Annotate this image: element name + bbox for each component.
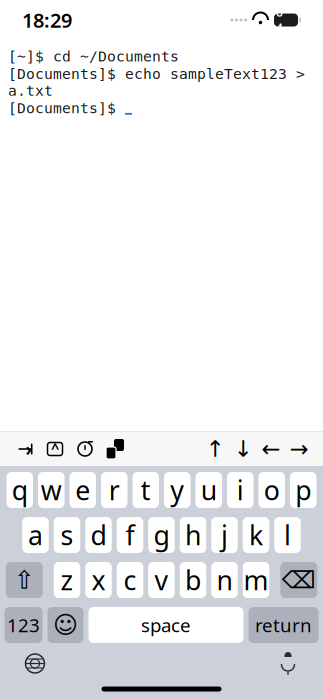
- button[interactable]: k: [243, 517, 269, 553]
- staticText: ↓: [233, 436, 252, 462]
- button[interactable]: Emoji: [47, 607, 83, 643]
- staticText: ☺: [53, 611, 78, 639]
- staticText: c: [123, 562, 136, 598]
- staticText: 18:29: [22, 7, 72, 33]
- staticText: s: [60, 517, 73, 553]
- button[interactable]: r: [101, 472, 127, 508]
- button[interactable]: y: [164, 472, 190, 508]
- button[interactable]: Up: [201, 432, 229, 466]
- staticText: a: [28, 517, 43, 553]
- button[interactable]: f: [117, 517, 143, 553]
- button[interactable]: h: [180, 517, 206, 553]
- staticText: b: [185, 562, 201, 598]
- button[interactable]: z: [54, 562, 80, 598]
- button[interactable]: Dictation: [271, 648, 305, 678]
- staticText: return: [255, 613, 312, 637]
- button[interactable]: c: [117, 562, 143, 598]
- button[interactable]: a: [22, 517, 49, 553]
- staticText: u: [201, 472, 217, 508]
- button[interactable]: v: [148, 562, 175, 598]
- button[interactable]: Shift: [6, 562, 43, 598]
- button[interactable]: t: [132, 472, 159, 508]
- button[interactable]: j: [211, 517, 238, 553]
- button[interactable]: g: [148, 517, 175, 553]
- staticText: z: [60, 562, 73, 598]
- button[interactable]: l: [274, 517, 301, 553]
- button[interactable]: Control: [40, 432, 70, 466]
- staticText: ⇧: [14, 566, 35, 594]
- button[interactable]: p: [290, 472, 316, 508]
- staticText: x: [91, 562, 105, 598]
- button[interactable]: w: [38, 472, 64, 508]
- button[interactable]: Delete: [280, 562, 317, 598]
- staticText: ⌫: [282, 566, 316, 594]
- staticText: j: [221, 517, 228, 553]
- staticText: i: [237, 472, 244, 508]
- staticText: t: [141, 472, 151, 508]
- staticText: ›: [25, 437, 31, 460]
- staticText: o: [264, 472, 280, 508]
- button[interactable]: u: [195, 472, 222, 508]
- button[interactable]: Right: [285, 432, 313, 466]
- staticText: space: [141, 613, 191, 637]
- staticText: [~]$ cd ~/Documents: [8, 48, 179, 65]
- staticText: q: [12, 472, 28, 508]
- button[interactable]: return: [248, 607, 318, 643]
- staticText: n: [216, 562, 232, 598]
- button[interactable]: x: [85, 562, 112, 598]
- staticText: ↑: [205, 436, 224, 462]
- staticText: h: [185, 517, 201, 553]
- button[interactable]: Left: [257, 432, 285, 466]
- staticText: ^: [51, 438, 59, 458]
- staticText: k: [249, 517, 263, 553]
- staticText: l: [284, 517, 291, 553]
- button[interactable]: Down: [229, 432, 257, 466]
- staticText: y: [170, 472, 184, 508]
- staticText: g: [153, 517, 169, 553]
- button[interactable]: s: [54, 517, 80, 553]
- button[interactable]: Tab: [10, 432, 40, 466]
- button[interactable]: q: [6, 472, 33, 508]
- button[interactable]: Paste: [100, 432, 130, 466]
- button[interactable]: i: [227, 472, 253, 508]
- staticText: f: [125, 517, 134, 553]
- staticText: 64: [276, 4, 283, 36]
- staticText: m: [243, 562, 268, 598]
- staticText: [Documents]$ echo sampleText123 > a.txt: [8, 66, 305, 99]
- staticText: r: [109, 472, 120, 508]
- button[interactable]: 123: [4, 607, 42, 643]
- staticText: →: [289, 436, 308, 462]
- staticText: w: [41, 472, 62, 508]
- staticText: d: [90, 517, 106, 553]
- button[interactable]: e: [69, 472, 96, 508]
- button[interactable]: Next keyboard: [18, 648, 52, 678]
- button[interactable]: o: [258, 472, 285, 508]
- button[interactable]: m: [243, 562, 269, 598]
- staticText: v: [154, 562, 168, 598]
- staticText: e: [75, 472, 90, 508]
- staticText: [Documents]$: [8, 100, 125, 116]
- button[interactable]: n: [211, 562, 238, 598]
- button[interactable]: d: [85, 517, 112, 553]
- staticText: p: [295, 472, 311, 508]
- button[interactable]: History: [70, 432, 100, 466]
- staticText: 123: [7, 613, 40, 637]
- button[interactable]: space: [88, 607, 243, 643]
- staticText: ←: [261, 436, 280, 462]
- button[interactable]: b: [180, 562, 206, 598]
